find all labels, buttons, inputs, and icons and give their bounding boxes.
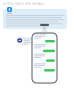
- staticText: Getting started with messages: [3, 2, 44, 5]
